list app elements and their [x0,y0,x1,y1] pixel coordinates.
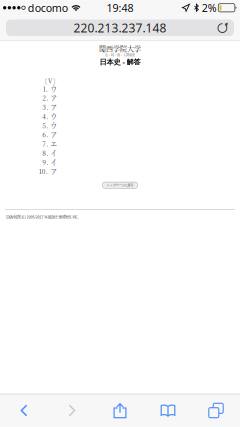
staticText: 1. [43,84,48,93]
staticText: 関西学院大学 [99,43,141,53]
staticText: ウ [50,84,57,93]
staticText: イ [50,148,57,158]
staticText: 7. [42,139,48,148]
staticText: ウ [50,111,57,121]
staticText: docomo [28,1,68,15]
staticText: 5. [42,121,48,130]
staticText: 8. [42,148,48,158]
staticText: Copyright (c) 1995-2017 Nagase Brothers … [5,214,78,219]
staticText: エ [50,139,57,148]
staticText: 220.213.237.148 [73,20,166,36]
button[interactable]: トップページに戻る [102,182,137,188]
staticText: ア [50,130,57,139]
staticText: 10. [39,167,48,176]
staticText: 3. [42,102,48,112]
staticText: 19:48 [106,1,133,15]
button[interactable]: Back [0,394,48,426]
staticText: 9. [42,157,48,167]
button[interactable]: Share [96,394,144,426]
staticText: ウ [50,121,57,130]
button[interactable]: Tabs [192,394,240,426]
staticText: 2. [42,93,48,102]
staticText: 日本史 - 解答 [99,57,140,67]
staticText: 〔Ⅴ〕 [41,76,59,85]
staticText: イ [50,157,57,167]
staticText: 法・経・商・人間福祉 [105,53,135,57]
staticText: 2% [202,1,217,15]
button[interactable]: 220.213.237.148 [0,15,240,40]
staticText: 6. [42,130,48,139]
staticText: ア [50,93,57,102]
staticText: 4. [42,111,48,121]
button[interactable]: Forward [48,394,96,426]
button[interactable]: Bookmarks [144,394,192,426]
staticText: ア [50,102,57,112]
staticText: ア [50,167,57,176]
staticText: トップページに戻る [106,183,133,187]
